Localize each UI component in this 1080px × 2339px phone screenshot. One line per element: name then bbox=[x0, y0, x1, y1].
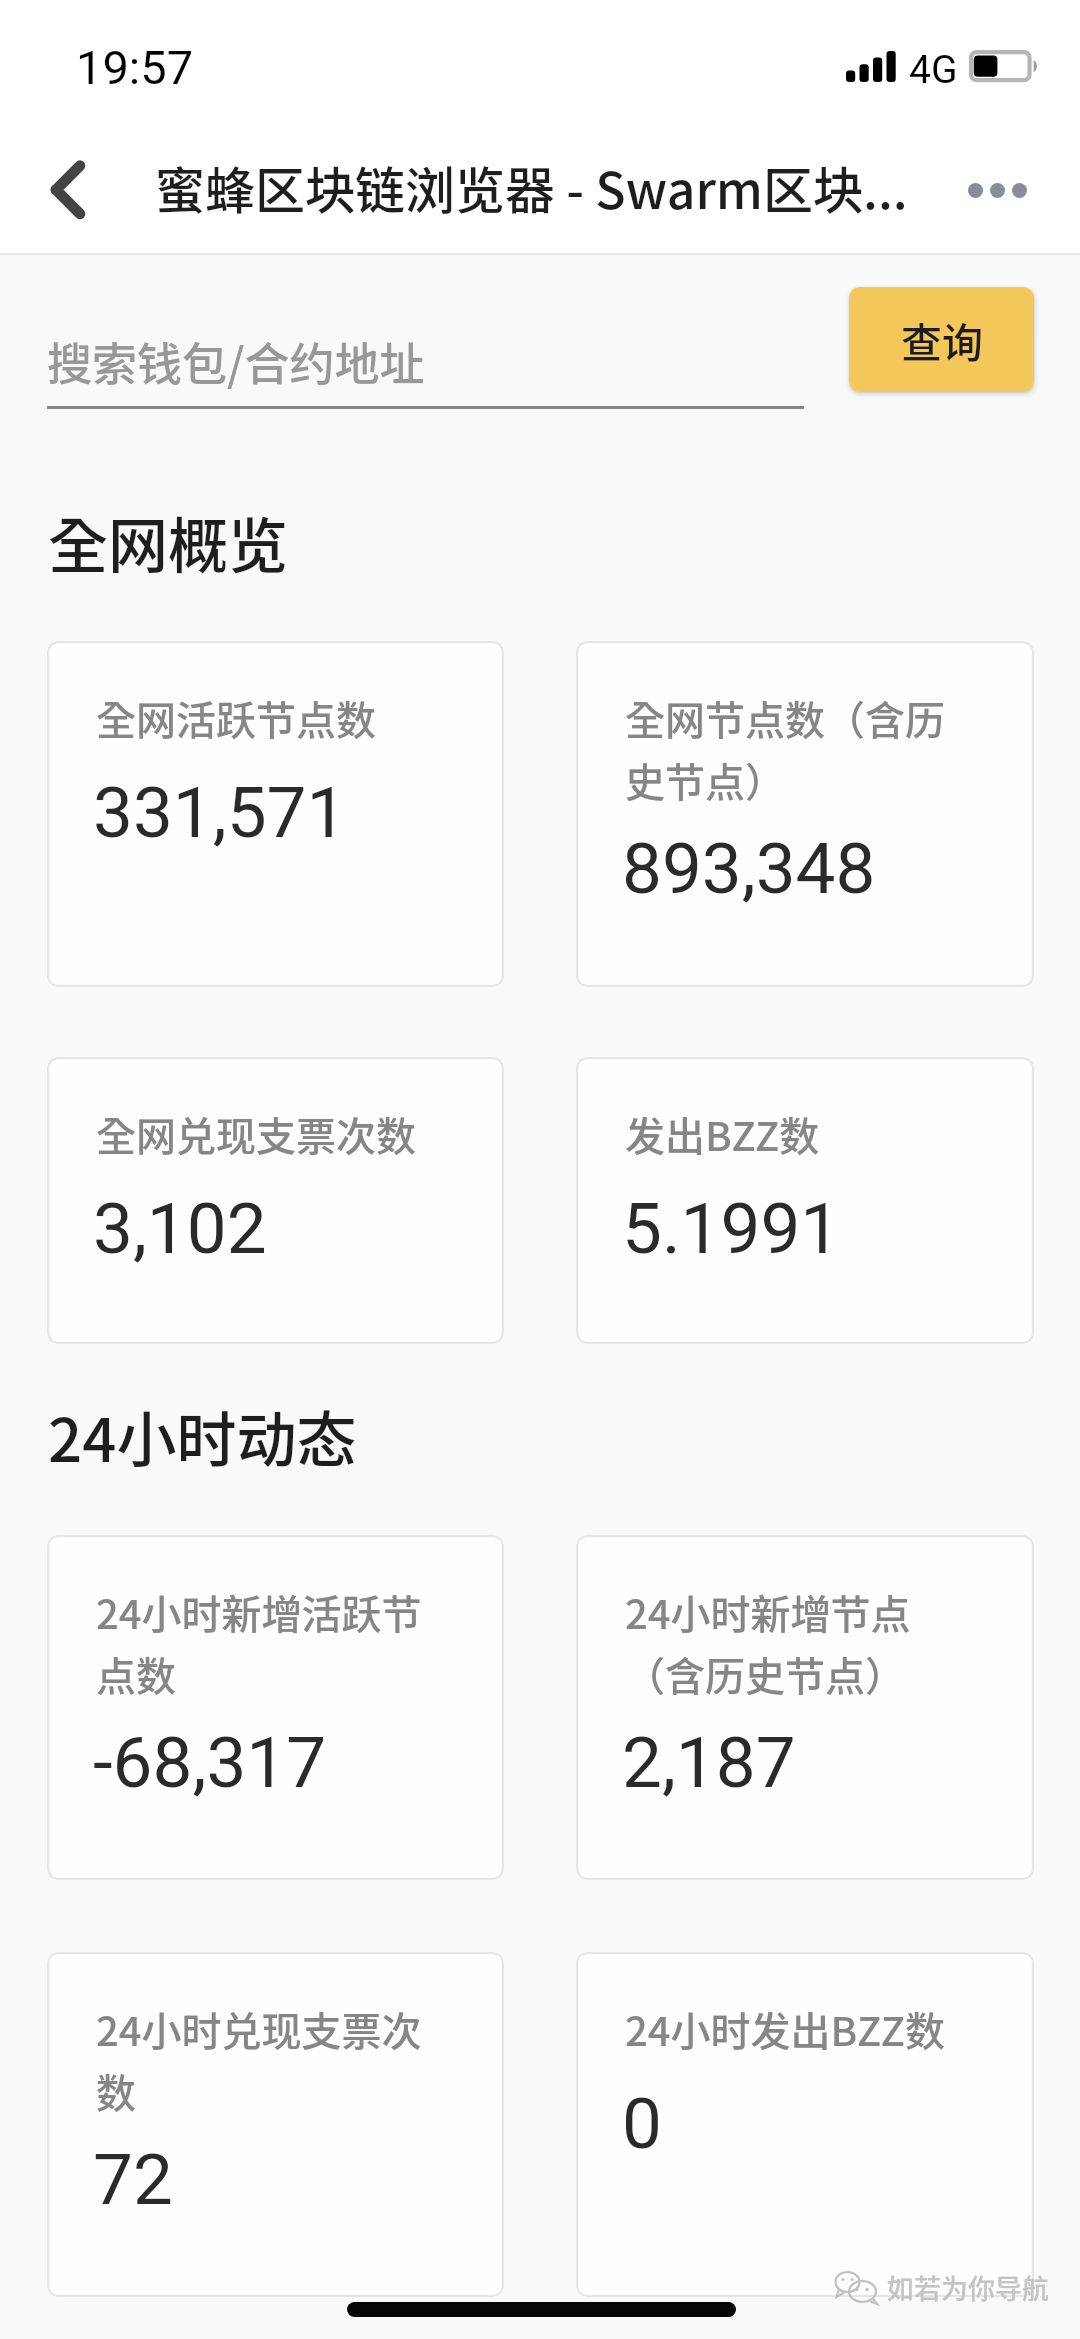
staticText: 331,571 bbox=[93, 771, 347, 854]
staticText: 搜索钱包/合约地址 bbox=[47, 329, 425, 394]
button[interactable]: 24小时新增节点 （含历史节点） bbox=[576, 1535, 1034, 1880]
staticText: 0 bbox=[622, 2082, 662, 2165]
button[interactable]: 全网活跃节点数 bbox=[47, 641, 504, 987]
button[interactable]: 24小时兑现支票次 数 bbox=[47, 1952, 504, 2297]
staticText: 24小时动态 bbox=[48, 1392, 357, 1479]
staticText: 24小时新增活跃节 点数 bbox=[96, 1583, 422, 1703]
button[interactable]: 全网节点数（含历 史节点） bbox=[576, 641, 1034, 987]
button[interactable]: More options bbox=[960, 168, 1035, 213]
staticText: 全网节点数（含历 史节点） bbox=[625, 689, 945, 809]
button[interactable]: 发出BZZ数 bbox=[576, 1057, 1034, 1344]
button[interactable]: 24小时发出BZZ数 bbox=[576, 1952, 1034, 2297]
staticText: 如若为你导航 bbox=[887, 2268, 1049, 2307]
staticText: 3,102 bbox=[93, 1187, 267, 1270]
staticText: 2,187 bbox=[622, 1721, 796, 1804]
staticText: 72 bbox=[93, 2138, 173, 2221]
button[interactable]: 全网兑现支票次数 bbox=[47, 1057, 504, 1344]
staticText: 24小时兑现支票次 数 bbox=[96, 2000, 422, 2120]
staticText: 全网概览 bbox=[48, 498, 288, 585]
staticText: 19:57 bbox=[76, 40, 194, 95]
staticText: 5.1991 bbox=[622, 1187, 841, 1270]
staticText: 查询 bbox=[901, 310, 983, 369]
staticText: -68,317 bbox=[93, 1721, 327, 1804]
button[interactable]: 24小时新增活跃节 点数 bbox=[47, 1535, 504, 1880]
button[interactable]: Back bbox=[28, 150, 108, 230]
staticText: 发出BZZ数 bbox=[625, 1105, 820, 1163]
staticText: 蜜蜂区块链浏览器 - Swarm区块... bbox=[155, 151, 935, 223]
staticText: 893,348 bbox=[622, 827, 876, 910]
button[interactable]: 查询 bbox=[849, 287, 1034, 392]
staticText: 全网兑现支票次数 bbox=[96, 1105, 416, 1163]
staticText: 全网活跃节点数 bbox=[96, 689, 376, 747]
staticText: 4G bbox=[909, 47, 958, 93]
button[interactable]: 搜索钱包/合约地址 bbox=[47, 329, 804, 409]
staticText: 24小时发出BZZ数 bbox=[625, 2000, 945, 2058]
staticText: 24小时新增节点 （含历史节点） bbox=[625, 1583, 911, 1703]
